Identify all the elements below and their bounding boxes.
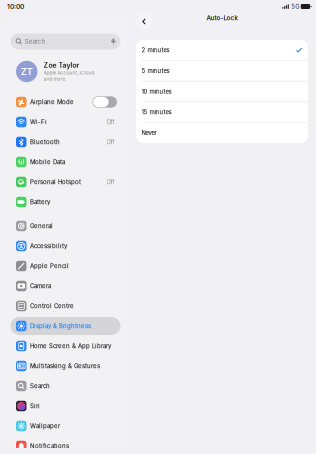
staticText: 2 minutes bbox=[141, 47, 169, 54]
button[interactable]: Mobile Data bbox=[10, 152, 120, 172]
staticText: Auto-Lock bbox=[206, 14, 237, 22]
staticText: Personal Hotspot bbox=[30, 178, 81, 186]
staticText: 10 minutes bbox=[141, 88, 171, 95]
staticText: Home Screen & App Library bbox=[30, 342, 111, 350]
button[interactable]: Camera bbox=[10, 276, 120, 296]
staticText: Search bbox=[24, 38, 45, 45]
button[interactable]: Notifications bbox=[10, 436, 120, 454]
button[interactable]: Wallpaper bbox=[10, 416, 120, 436]
button[interactable]: 2 minutes bbox=[136, 40, 308, 60]
staticText: and more bbox=[43, 76, 65, 82]
staticText: Notifications bbox=[30, 442, 69, 450]
staticText: General bbox=[30, 222, 53, 230]
staticText: Never bbox=[141, 129, 156, 136]
staticText: Siri bbox=[30, 402, 40, 410]
staticText: Wi-Fi bbox=[30, 118, 47, 126]
button[interactable]: Home Screen & App Library bbox=[10, 336, 120, 356]
button[interactable]: ZT bbox=[11, 58, 120, 84]
staticText: 5G bbox=[291, 3, 299, 10]
staticText: Battery bbox=[30, 198, 50, 206]
button[interactable]: Display & Brightness bbox=[10, 316, 120, 336]
staticText: Camera bbox=[30, 282, 51, 290]
staticText: ZT bbox=[21, 66, 33, 77]
staticText: Zoe Taylor bbox=[43, 61, 79, 69]
button[interactable]: Bluetooth bbox=[10, 132, 120, 152]
button[interactable]: Airplane Mode bbox=[10, 92, 120, 112]
button[interactable]: Search bbox=[10, 376, 120, 396]
button[interactable]: Personal Hotspot bbox=[10, 172, 120, 192]
staticText: Bluetooth bbox=[30, 138, 60, 146]
staticText: Control Centre bbox=[30, 302, 74, 310]
staticText: 10:00 bbox=[7, 2, 24, 11]
staticText: Apple Pencil bbox=[30, 262, 69, 270]
staticText: Accessibility bbox=[30, 242, 67, 250]
button[interactable]: Apple Pencil bbox=[10, 256, 120, 276]
button[interactable]: Multitasking & Gestures bbox=[10, 356, 120, 376]
staticText: Wallpaper bbox=[30, 422, 60, 430]
staticText: Apple Account, iCloud bbox=[43, 70, 94, 76]
staticText: Off bbox=[106, 138, 114, 146]
button[interactable]: Never bbox=[136, 123, 308, 143]
staticText: Off bbox=[106, 118, 114, 126]
staticText: 15 minutes bbox=[141, 109, 171, 116]
button[interactable]: Back bbox=[136, 13, 152, 29]
button[interactable]: Battery bbox=[10, 192, 120, 212]
staticText: Search bbox=[30, 382, 50, 390]
button[interactable]: General bbox=[10, 216, 120, 236]
button[interactable]: 15 minutes bbox=[136, 102, 308, 122]
button[interactable]: 10 minutes bbox=[136, 81, 308, 102]
button[interactable]: Wi-Fi bbox=[10, 112, 120, 132]
staticText: Airplane Mode bbox=[30, 98, 74, 106]
staticText: Multitasking & Gestures bbox=[30, 362, 100, 370]
button[interactable]: 5 minutes bbox=[136, 61, 308, 81]
staticText: 5 minutes bbox=[141, 67, 169, 74]
staticText: Display & Brightness bbox=[30, 322, 91, 330]
staticText: Off bbox=[106, 178, 114, 186]
staticText: Mobile Data bbox=[30, 158, 65, 166]
button[interactable]: Accessibility bbox=[10, 236, 120, 256]
button[interactable]: Siri bbox=[10, 396, 120, 416]
button[interactable]: Control Centre bbox=[10, 296, 120, 316]
